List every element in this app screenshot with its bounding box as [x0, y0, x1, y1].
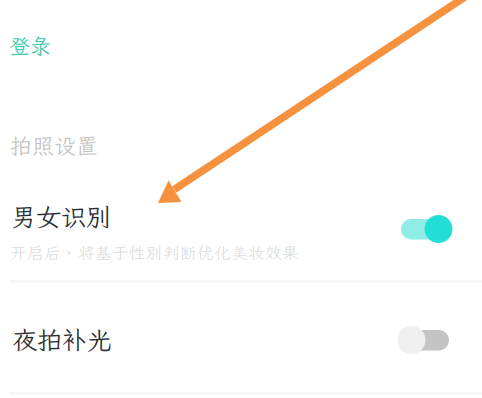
button[interactable]: 夜拍补光 开关，已关闭	[397, 324, 453, 356]
staticText: 开启后，将基于性别判断优化美妆效果	[10, 242, 299, 264]
button[interactable]: 男女识别	[0, 186, 482, 280]
staticText: 拍照设置	[10, 131, 98, 160]
staticText: 夜拍补光	[12, 323, 112, 356]
button[interactable]: 男女识别 开关，已开启	[397, 213, 453, 245]
button[interactable]: 夜拍补光	[0, 300, 482, 392]
staticText: 男女识别	[11, 200, 111, 233]
button[interactable]: 登录	[9, 32, 51, 60]
staticText: 登录	[9, 32, 51, 60]
